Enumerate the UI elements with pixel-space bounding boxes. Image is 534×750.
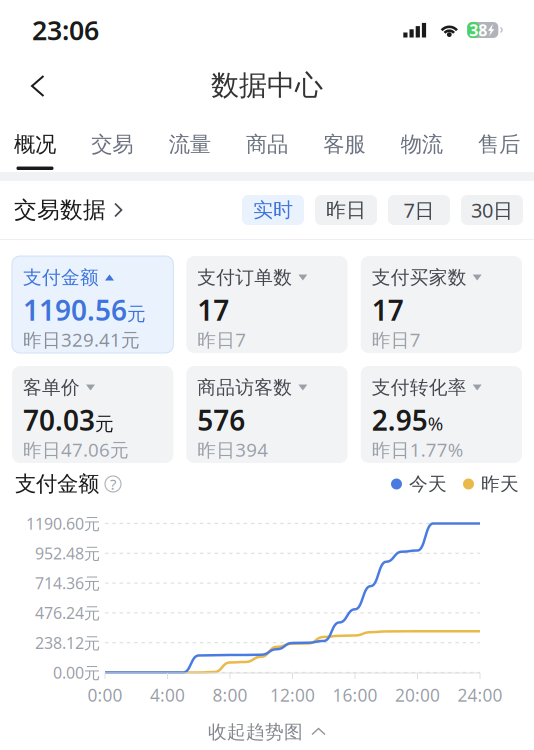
staticText: 元 [95, 413, 114, 436]
staticText: 收起趋势图 [208, 720, 303, 743]
staticText: 支付买家数 [372, 266, 467, 289]
button[interactable]: 客单价 [12, 366, 173, 463]
staticText: 12:00 [270, 683, 315, 706]
staticText: 昨日47.06元 [23, 437, 129, 462]
button[interactable]: 物流 [393, 112, 451, 172]
staticText: 38 [469, 19, 487, 41]
button[interactable]: 交易数据 [14, 196, 123, 224]
button[interactable]: 支付订单数 [186, 256, 348, 353]
staticText: 4:00 [150, 683, 185, 706]
button[interactable]: 商品访客数 [186, 366, 348, 463]
staticText: 物流 [401, 131, 443, 157]
staticText: 昨日7 [197, 327, 246, 352]
staticText: 714.36元 [35, 572, 100, 594]
staticText: 商品访客数 [197, 376, 292, 399]
staticText: 7日 [403, 197, 434, 223]
staticText: 流量 [169, 131, 211, 157]
button[interactable]: 30日 [461, 195, 523, 225]
staticText: 952.48元 [35, 543, 100, 564]
button[interactable]: 交易 [83, 112, 141, 172]
staticText: 70.03 [23, 401, 95, 439]
staticText: 30日 [471, 197, 513, 223]
staticText: 昨日394 [197, 437, 268, 462]
staticText: 概况 [14, 131, 56, 157]
staticText: 17 [372, 291, 404, 329]
button[interactable]: 收起趋势图 [0, 710, 534, 750]
staticText: 实时 [253, 198, 293, 222]
staticText: % [428, 411, 444, 436]
staticText: 0.00元 [53, 662, 100, 683]
staticText: 576 [197, 401, 245, 439]
button[interactable]: 商品 [238, 112, 296, 172]
staticText: 支付订单数 [197, 266, 292, 289]
staticText: 238.12元 [35, 632, 100, 653]
staticText: 售后 [478, 131, 520, 157]
button[interactable]: 概况 [6, 112, 64, 172]
staticText: 客服 [323, 131, 365, 157]
staticText: 1190.56 [23, 291, 127, 329]
staticText: 476.24元 [35, 602, 100, 623]
staticText: 昨日7 [372, 327, 421, 352]
staticText: 支付金额 [15, 471, 99, 497]
staticText: 数据中心 [211, 68, 323, 103]
button[interactable]: 返回 [16, 59, 60, 108]
staticText: 今天 [409, 472, 447, 495]
staticText: 支付金额 [23, 266, 99, 289]
button[interactable]: 支付金额 [12, 256, 173, 353]
staticText: 支付转化率 [372, 376, 467, 399]
button[interactable]: 售后 [470, 112, 528, 172]
button[interactable]: 客服 [315, 112, 373, 172]
button[interactable]: 昨日 [315, 195, 377, 225]
staticText: 2.95 [372, 401, 428, 439]
staticText: 1190.60元 [26, 513, 100, 534]
staticText: 20:00 [395, 683, 440, 706]
staticText: 商品 [246, 131, 288, 157]
staticText: 8:00 [212, 683, 247, 706]
button[interactable]: 支付转化率 [361, 366, 522, 463]
staticText: 17 [197, 291, 229, 329]
staticText: 客单价 [23, 376, 80, 399]
button[interactable]: 7日 [388, 195, 450, 225]
staticText: 昨日 [326, 198, 366, 222]
staticText: 0:00 [87, 683, 122, 706]
staticText: 元 [127, 303, 146, 326]
button[interactable]: 实时 [242, 195, 304, 225]
staticText: 24:00 [457, 683, 502, 706]
button[interactable]: 说明 [105, 476, 121, 492]
staticText: 交易数据 [14, 196, 106, 224]
staticText: 交易 [91, 131, 133, 157]
staticText: 昨天 [481, 472, 519, 495]
staticText: ? [110, 474, 116, 494]
staticText: 16:00 [332, 683, 377, 706]
button[interactable]: 支付买家数 [361, 256, 522, 353]
staticText: 昨日329.41元 [23, 327, 140, 352]
button[interactable]: 流量 [161, 112, 219, 172]
staticText: 昨日1.77% [372, 437, 464, 462]
staticText: 23:06 [32, 12, 99, 48]
